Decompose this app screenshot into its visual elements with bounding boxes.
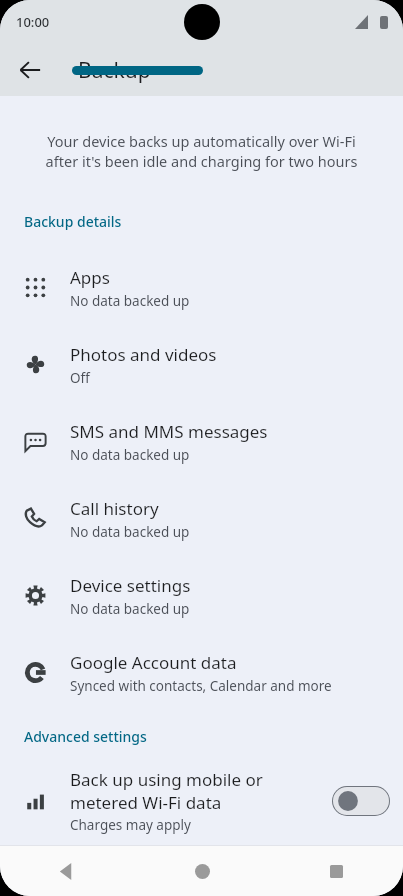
button[interactable]: Back	[0, 846, 135, 896]
button[interactable]: Back up using mobile or metered Wi-Fi da…	[0, 758, 403, 844]
staticText: Backup	[78, 56, 151, 85]
button[interactable]: Recent apps	[269, 846, 403, 896]
staticText: 10:00	[16, 13, 50, 31]
button[interactable]	[72, 66, 203, 75]
staticText: No data backed up	[70, 446, 190, 464]
button[interactable]: Device settings	[0, 557, 403, 634]
staticText: Call history	[70, 497, 159, 520]
staticText: No data backed up	[70, 292, 190, 310]
button[interactable]: Back up using mobile or metered Wi-Fi da…	[332, 786, 390, 816]
button[interactable]: Home	[135, 846, 269, 896]
staticText: Your device backs up automatically over …	[18, 131, 385, 172]
staticText: Backup details	[24, 212, 403, 231]
button[interactable]: SMS and MMS messages	[0, 403, 403, 480]
staticText: Synced with contacts, Calendar and more	[70, 677, 332, 695]
button[interactable]: Back	[10, 50, 50, 90]
staticText: Advanced settings	[24, 727, 403, 746]
button[interactable]: Photos and videos	[0, 326, 403, 403]
staticText: Photos and videos	[70, 343, 217, 366]
staticText: Back up using mobile or metered Wi-Fi da…	[70, 768, 263, 814]
button[interactable]: Apps	[0, 249, 403, 326]
button[interactable]: Call history	[0, 480, 403, 557]
staticText: Device settings	[70, 574, 191, 597]
staticText: Apps	[70, 266, 110, 289]
staticText: Google Account data	[70, 651, 237, 674]
staticText: SMS and MMS messages	[70, 420, 268, 443]
staticText: Off	[70, 369, 90, 387]
button[interactable]: Google Account data	[0, 634, 403, 711]
staticText: No data backed up	[70, 600, 190, 618]
staticText: No data backed up	[70, 523, 190, 541]
staticText: Charges may apply	[70, 816, 191, 834]
